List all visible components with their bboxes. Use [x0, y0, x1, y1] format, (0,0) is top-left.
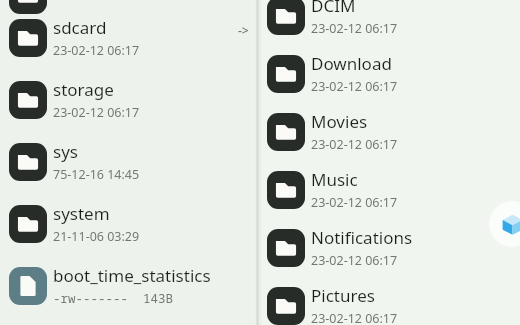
staticText: 75-12-16 14:45: [53, 166, 140, 183]
staticText: Download: [311, 52, 392, 75]
button[interactable]: sys: [0, 138, 256, 194]
staticText: 23-02-12 06:17: [311, 136, 398, 153]
button[interactable]: DCIM: [256, 0, 520, 48]
button[interactable]: New item: [489, 201, 520, 247]
staticText: 23-02-12 06:17: [311, 310, 398, 325]
staticText: 23-02-12 06:17: [311, 78, 398, 95]
staticText: 21-11-06 03:29: [53, 228, 140, 245]
staticText: Notifications: [311, 226, 413, 249]
staticText: sdcard: [53, 16, 107, 39]
staticText: 23-02-12 06:17: [311, 194, 398, 211]
staticText: ->: [238, 22, 249, 38]
button[interactable]: boot_time_statistics: [0, 262, 256, 318]
button[interactable]: Music: [256, 166, 520, 222]
button[interactable]: system: [0, 200, 256, 256]
staticText: 23-02-12 06:17: [311, 252, 398, 269]
staticText: Movies: [311, 110, 368, 133]
button[interactable]: Notifications: [256, 224, 520, 280]
button[interactable]: Pictures: [256, 282, 520, 325]
button[interactable]: Movies: [256, 108, 520, 164]
staticText: storage: [53, 78, 114, 101]
staticText: DCIM: [311, 0, 356, 17]
staticText: 23-02-12 06:17: [53, 104, 140, 121]
button[interactable]: Download: [256, 50, 520, 106]
button[interactable]: storage: [0, 76, 256, 132]
staticText: system: [53, 202, 110, 225]
staticText: 23-02-12 06:17: [53, 42, 140, 59]
staticText: 23-02-12 06:17: [311, 20, 398, 37]
staticText: -rw------- 143B: [53, 290, 174, 307]
staticText: Pictures: [311, 284, 375, 307]
staticText: Music: [311, 168, 358, 191]
button[interactable]: sdcard: [0, 14, 256, 70]
staticText: sys: [53, 140, 78, 163]
staticText: boot_time_statistics: [53, 264, 211, 287]
